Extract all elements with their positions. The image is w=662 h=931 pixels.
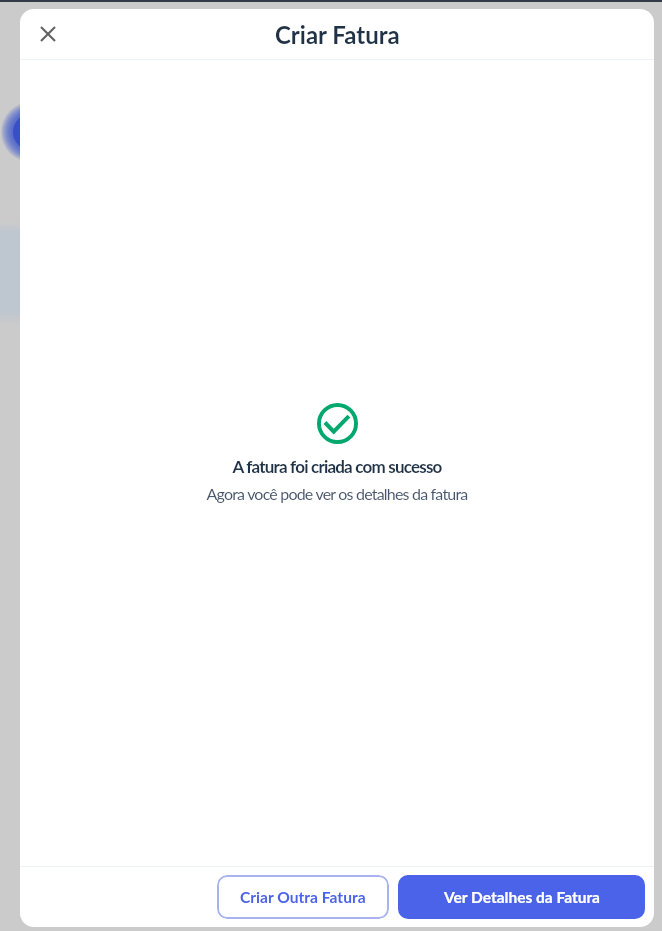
staticText: Criar Outra Fatura bbox=[240, 888, 366, 907]
staticText: A fatura foi criada com sucesso bbox=[232, 456, 442, 476]
staticText: Ver Detalhes da Fatura bbox=[444, 888, 600, 907]
button[interactable]: Fechar bbox=[28, 14, 68, 54]
staticText: Agora você pode ver os detalhes da fatur… bbox=[206, 484, 468, 503]
button[interactable]: Ver Detalhes da Fatura bbox=[398, 875, 645, 919]
staticText: Criar Fatura bbox=[275, 20, 400, 49]
button[interactable]: Criar Outra Fatura bbox=[217, 875, 389, 919]
